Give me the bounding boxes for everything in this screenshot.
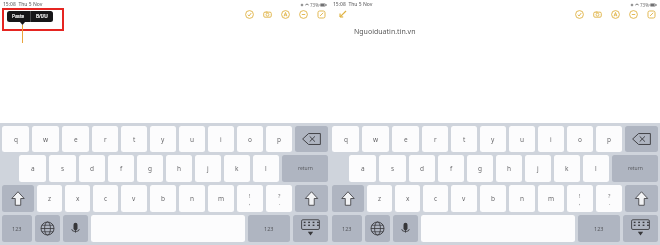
button[interactable]: a	[349, 155, 376, 182]
button[interactable]: Globe	[365, 215, 390, 242]
button[interactable]: j	[525, 155, 551, 182]
button[interactable]: c	[93, 185, 118, 212]
button[interactable]: j	[195, 155, 221, 182]
button[interactable]: p	[266, 126, 292, 152]
button[interactable]: Hide keyboard	[623, 215, 658, 242]
button[interactable]: k	[224, 155, 250, 182]
button[interactable]: Collapse	[299, 10, 308, 19]
button[interactable]: u	[179, 126, 205, 152]
staticText: g	[478, 164, 482, 173]
button[interactable]: f	[108, 155, 134, 182]
button[interactable]: t	[121, 126, 147, 152]
button[interactable]: return	[612, 155, 658, 182]
staticText: ?	[608, 192, 611, 199]
button[interactable]: m	[538, 185, 564, 212]
button[interactable]: Done	[245, 10, 254, 19]
button[interactable]: Compose	[317, 10, 326, 19]
button[interactable]: Camera	[263, 10, 272, 19]
button[interactable]: b	[480, 185, 506, 212]
button[interactable]: x	[395, 185, 420, 212]
button[interactable]: Markup	[281, 10, 290, 19]
button[interactable]: n	[509, 185, 535, 212]
button[interactable]: k	[554, 155, 580, 182]
button[interactable]: 123	[578, 215, 620, 242]
staticText: s	[391, 164, 395, 173]
staticText: e	[74, 135, 78, 144]
button[interactable]: Backspace	[295, 126, 328, 152]
button[interactable]: s	[49, 155, 76, 182]
button[interactable]: Dictate	[63, 215, 88, 242]
button[interactable]: y	[150, 126, 176, 152]
button[interactable]: Shift right	[625, 185, 658, 212]
button[interactable]: Backspace	[625, 126, 658, 152]
button[interactable]: Camera	[593, 10, 602, 19]
button[interactable]: g	[137, 155, 163, 182]
button[interactable]: Globe	[35, 215, 60, 242]
button[interactable]: i	[538, 126, 564, 152]
button[interactable]: e	[62, 126, 89, 152]
button[interactable]: a	[19, 155, 46, 182]
button[interactable]: y	[480, 126, 506, 152]
button[interactable]: Shift right	[295, 185, 328, 212]
button[interactable]: Collapse	[629, 10, 638, 19]
button[interactable]: f	[438, 155, 464, 182]
button[interactable]: z	[367, 185, 392, 212]
staticText: b	[491, 194, 495, 203]
button[interactable]: w	[32, 126, 59, 152]
button[interactable]: m	[208, 185, 234, 212]
button[interactable]: d	[79, 155, 105, 182]
staticText: c	[434, 194, 438, 203]
button[interactable]: Hide keyboard	[293, 215, 328, 242]
button[interactable]: return	[282, 155, 328, 182]
button[interactable]: t	[451, 126, 477, 152]
button[interactable]: Shift	[2, 185, 34, 212]
staticText: n	[520, 194, 525, 203]
button[interactable]: Dictate	[393, 215, 418, 242]
button[interactable]: i	[208, 126, 234, 152]
button[interactable]: 123	[332, 215, 362, 242]
button[interactable]: 123	[2, 215, 32, 242]
button[interactable]: B/I/U	[31, 11, 53, 22]
button[interactable]: Shift	[332, 185, 364, 212]
button[interactable]: v	[451, 185, 477, 212]
button[interactable]: o	[567, 126, 593, 152]
button[interactable]: u	[509, 126, 535, 152]
button[interactable]: ?	[596, 185, 622, 212]
button[interactable]: c	[423, 185, 448, 212]
button[interactable]: v	[121, 185, 147, 212]
button[interactable]: s	[379, 155, 406, 182]
button[interactable]: o	[237, 126, 263, 152]
button[interactable]: Compose	[647, 10, 656, 19]
button[interactable]: r	[92, 126, 118, 152]
button[interactable]: e	[392, 126, 419, 152]
button[interactable]: !	[567, 185, 593, 212]
button[interactable]: g	[467, 155, 493, 182]
button[interactable]: w	[362, 126, 389, 152]
button[interactable]: z	[37, 185, 62, 212]
button[interactable]: q	[2, 126, 29, 152]
button[interactable]: b	[150, 185, 176, 212]
staticText: c	[104, 194, 108, 203]
button[interactable]: h	[496, 155, 522, 182]
button[interactable]: p	[596, 126, 622, 152]
button[interactable]: n	[179, 185, 205, 212]
button[interactable]: !	[237, 185, 263, 212]
staticText: e	[404, 135, 408, 144]
button[interactable]: x	[65, 185, 90, 212]
staticText: x	[406, 194, 410, 203]
button[interactable]: Paste	[7, 11, 30, 22]
button[interactable]: d	[409, 155, 435, 182]
button[interactable]: q	[332, 126, 359, 152]
button[interactable]: l	[583, 155, 609, 182]
button[interactable]: l	[253, 155, 279, 182]
button[interactable]: r	[422, 126, 448, 152]
button[interactable]: 123	[248, 215, 290, 242]
staticText: w	[373, 135, 379, 144]
button[interactable]: Done	[575, 10, 584, 19]
button[interactable]: h	[166, 155, 192, 182]
button[interactable]: ?	[266, 185, 292, 212]
button[interactable]: Markup	[611, 10, 620, 19]
staticText: .	[279, 199, 281, 206]
